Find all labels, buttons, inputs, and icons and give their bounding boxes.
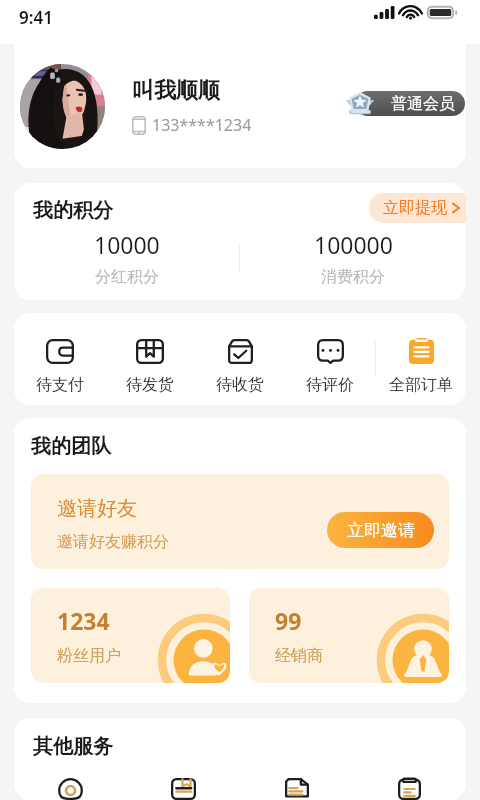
staticText: 分红积分: [95, 267, 159, 287]
staticText: 其他服务: [33, 734, 113, 759]
staticText: 粉丝用户: [57, 646, 121, 666]
button[interactable]: Nearby store: [14, 778, 127, 800]
staticText: 经销商: [275, 646, 323, 666]
button[interactable]: Documents: [240, 778, 353, 800]
button[interactable]: 邀请好友: [31, 474, 449, 569]
staticText: 133****1234: [152, 114, 252, 136]
staticText: 全部订单: [389, 375, 453, 395]
button[interactable]: 普通会员: [345, 86, 465, 120]
button[interactable]: 全部订单: [376, 313, 466, 405]
staticText: 待评价: [306, 375, 354, 395]
staticText: 待发货: [126, 375, 174, 395]
button[interactable]: 待评价: [285, 313, 375, 405]
staticText: 100000: [314, 229, 393, 260]
staticText: 9:41: [19, 6, 53, 29]
button[interactable]: Manual: [127, 778, 240, 800]
button[interactable]: 99: [249, 588, 449, 683]
staticText: 消费积分: [321, 267, 385, 287]
staticText: 邀请好友: [57, 496, 137, 521]
staticText: 99: [275, 605, 302, 636]
button[interactable]: 立即邀请: [327, 512, 434, 548]
staticText: 我的积分: [33, 198, 113, 223]
staticText: 邀请好友赚积分: [57, 532, 169, 552]
staticText: 待收货: [216, 375, 264, 395]
staticText: 普通会员: [391, 94, 455, 114]
staticText: 10000: [94, 229, 160, 260]
staticText: 叫我顺顺: [132, 77, 220, 105]
button[interactable]: Orders: [353, 778, 466, 800]
staticText: 1234: [57, 605, 110, 636]
button[interactable]: 待收货: [195, 313, 285, 405]
button[interactable]: 1234: [31, 588, 230, 683]
button[interactable]: 待支付: [14, 313, 105, 405]
staticText: 我的团队: [31, 434, 111, 459]
staticText: 立即提现: [383, 198, 447, 218]
staticText: 立即邀请: [347, 520, 415, 541]
staticText: 待支付: [36, 375, 84, 395]
button[interactable]: 立即提现: [369, 193, 466, 223]
button[interactable]: 叫我顺顺: [14, 44, 466, 168]
button[interactable]: 待发货: [105, 313, 195, 405]
